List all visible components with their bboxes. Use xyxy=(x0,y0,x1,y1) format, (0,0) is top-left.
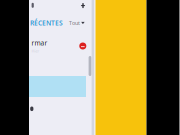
button[interactable]: New call xyxy=(81,3,85,8)
staticText: RÉCENTES xyxy=(30,19,63,27)
button[interactable]: RÉCENTES xyxy=(30,19,64,27)
button[interactable]: rmar xyxy=(29,36,91,56)
button[interactable]: Tout xyxy=(69,19,87,27)
staticText: Tout xyxy=(69,19,80,27)
button[interactable]: Profile xyxy=(32,3,34,8)
staticText: rmar xyxy=(32,38,48,47)
staticText: Hier xyxy=(32,48,40,53)
